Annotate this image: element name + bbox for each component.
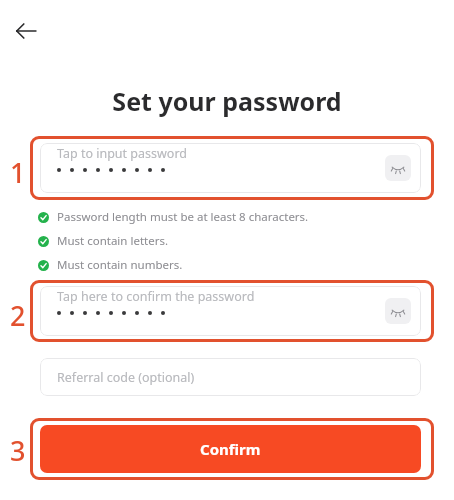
staticText: Confirm <box>200 439 261 459</box>
staticText: Set your password <box>112 84 342 118</box>
button[interactable]: Referral code (optional) <box>40 358 421 396</box>
staticText: Must contain numbers. <box>57 257 183 273</box>
button[interactable]: Tap to input password <box>40 143 421 193</box>
staticText: 2 <box>10 297 26 329</box>
button[interactable]: Show password <box>385 298 411 324</box>
button[interactable]: Show password <box>385 155 411 181</box>
button[interactable]: Confirm <box>40 425 421 473</box>
staticText: 3 <box>10 432 26 464</box>
staticText: 1 <box>10 154 26 186</box>
button[interactable]: Tap here to confirm the password <box>40 286 421 336</box>
staticText: Tap to input password <box>57 145 188 162</box>
staticText: Password length must be at least 8 chara… <box>57 209 309 225</box>
button[interactable]: Back <box>6 11 46 51</box>
staticText: Tap here to confirm the password <box>57 288 255 305</box>
staticText: Must contain letters. <box>57 233 169 249</box>
staticText: Referral code (optional) <box>57 369 195 386</box>
